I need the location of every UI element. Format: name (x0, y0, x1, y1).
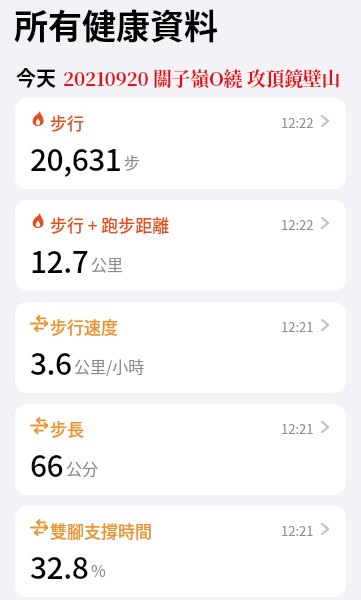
staticText: 今天 (16, 63, 56, 92)
staticText: 20210920 關子嶺O繞 攻頂鏡壁山 (63, 64, 341, 91)
button[interactable]: 雙腳支撐時間 (15, 506, 346, 597)
staticText: 12:21 (281, 317, 314, 336)
staticText: 步長 (50, 416, 84, 441)
staticText: 雙腳支撐時間 (50, 518, 152, 543)
button[interactable]: 步長 (15, 404, 346, 495)
button[interactable]: 步行 (15, 98, 346, 189)
staticText: 步行 (50, 110, 84, 135)
staticText: 66 (30, 442, 64, 485)
staticText: 12:21 (281, 419, 314, 438)
staticText: 公分 (66, 456, 99, 479)
staticText: % (91, 558, 106, 581)
button[interactable]: 步行 + 跑步距離 (15, 200, 346, 291)
staticText: 公里 (91, 252, 124, 275)
staticText: 3.6 (30, 340, 72, 383)
staticText: 步行速度 (50, 314, 118, 339)
staticText: 12:22 (281, 113, 314, 132)
staticText: 步行 + 跑步距離 (50, 212, 170, 237)
staticText: 20,631 (30, 136, 122, 179)
staticText: 公里/小時 (74, 354, 145, 377)
staticText: 12:22 (281, 215, 314, 234)
staticText: 所有健康資料 (14, 0, 218, 49)
button[interactable]: 步行速度 (15, 302, 346, 393)
staticText: 步 (124, 150, 141, 173)
staticText: 12:21 (281, 521, 314, 540)
staticText: 12.7 (30, 238, 89, 281)
staticText: 32.8 (30, 544, 89, 587)
